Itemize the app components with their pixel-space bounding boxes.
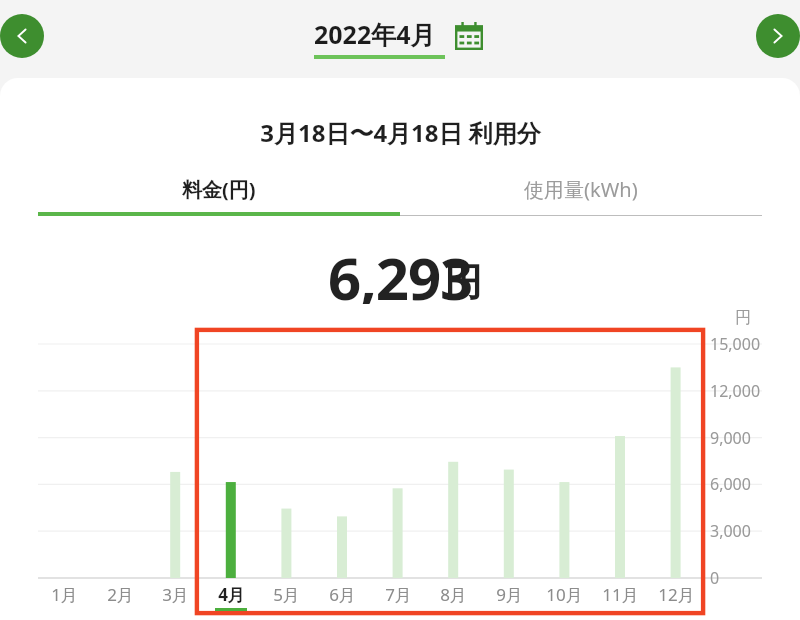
staticText: 7月 [385, 583, 412, 606]
other: カレンダー [455, 22, 483, 50]
button[interactable]: 7月 [371, 583, 425, 617]
button[interactable]: 8月 [426, 583, 480, 617]
button[interactable]: 次の月 [756, 14, 800, 58]
button[interactable]: 10月 [537, 583, 591, 617]
staticText: 5月 [273, 583, 300, 606]
staticText: 2022年4月 [314, 17, 436, 51]
staticText: 0 [710, 567, 720, 589]
button[interactable]: 料金(円) [38, 170, 400, 218]
staticText: 10月 [546, 583, 583, 606]
button[interactable]: 12月 [649, 583, 703, 617]
button[interactable]: 3月 [148, 583, 202, 617]
button[interactable]: 前の月 [0, 14, 44, 58]
staticText: 9,000 [710, 427, 751, 449]
staticText: 11月 [602, 583, 639, 606]
staticText: 3月 [162, 583, 189, 606]
button[interactable]: 2022年4月 [310, 12, 488, 62]
staticText: 6,293 [328, 238, 473, 304]
button[interactable]: 2月 [93, 583, 147, 617]
staticText: 3月18日〜4月18日 利用分 [260, 116, 541, 149]
button[interactable]: 使用量(kWh) [400, 170, 762, 218]
staticText: 使用量(kWh) [524, 176, 638, 203]
staticText: 6,000 [710, 473, 751, 495]
button[interactable]: 4月 [204, 583, 258, 617]
staticText: 円 [735, 308, 751, 328]
button[interactable]: 11月 [593, 583, 647, 617]
staticText: 円 [444, 258, 482, 306]
staticText: 2月 [107, 583, 134, 606]
staticText: 3,000 [710, 520, 751, 542]
staticText: 6月 [329, 583, 356, 606]
staticText: 料金(円) [182, 176, 256, 203]
button[interactable]: 9月 [482, 583, 536, 617]
button[interactable]: 5月 [259, 583, 313, 617]
staticText: 8月 [440, 583, 467, 606]
staticText: 12月 [658, 583, 695, 606]
staticText: 9月 [496, 583, 523, 606]
staticText: 12,000 [710, 380, 761, 402]
button[interactable]: 6月 [315, 583, 369, 617]
staticText: 1月 [51, 583, 78, 606]
staticText: 4月 [218, 583, 245, 606]
staticText: 15,000 [710, 333, 761, 355]
button[interactable]: 1月 [37, 583, 91, 617]
